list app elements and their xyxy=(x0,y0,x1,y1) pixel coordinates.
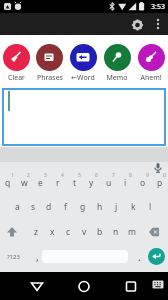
button[interactable]: g xyxy=(74,196,91,218)
staticText: g xyxy=(80,201,86,213)
button[interactable]: m xyxy=(124,221,140,243)
staticText: 1 xyxy=(11,172,14,179)
button[interactable] xyxy=(2,88,166,146)
staticText: d xyxy=(46,201,52,213)
staticText: b xyxy=(97,226,103,238)
staticText: s xyxy=(31,201,36,213)
staticText: o xyxy=(140,177,146,189)
staticText: ←Word xyxy=(71,73,95,83)
button[interactable]: 7 xyxy=(100,172,117,194)
button[interactable] xyxy=(129,16,145,32)
staticText: 0 xyxy=(163,172,166,179)
staticText: y xyxy=(89,177,94,189)
button[interactable]: 2 xyxy=(16,172,32,194)
staticText: q xyxy=(5,177,11,189)
staticText: 3 xyxy=(44,172,47,179)
staticText: i xyxy=(124,177,127,189)
staticText: t xyxy=(73,177,77,189)
staticText: f xyxy=(64,201,67,213)
staticText: 7 xyxy=(112,172,115,179)
button[interactable]: 3 xyxy=(32,172,49,194)
staticText: h xyxy=(97,201,103,213)
staticText: c xyxy=(66,226,71,238)
button[interactable]: d xyxy=(41,196,57,218)
button[interactable] xyxy=(74,276,94,296)
button[interactable]: Phrases xyxy=(33,35,66,83)
button[interactable]: f xyxy=(57,196,74,218)
staticText: a xyxy=(15,201,20,213)
staticText: ?123 xyxy=(7,253,20,261)
button[interactable]: a xyxy=(9,196,25,218)
button[interactable]: ←Word xyxy=(66,35,100,83)
button[interactable]: b xyxy=(92,221,108,243)
staticText: k xyxy=(131,201,136,213)
staticText: 9 xyxy=(146,172,149,179)
staticText: z xyxy=(34,226,38,238)
button[interactable]: 5 xyxy=(66,172,83,194)
button[interactable]: h xyxy=(91,196,108,218)
button[interactable]: x xyxy=(44,221,60,243)
button[interactable]: n xyxy=(108,221,124,243)
staticText: n xyxy=(113,226,119,238)
staticText: Ahem! xyxy=(140,73,162,83)
button[interactable]: ?123 xyxy=(2,246,24,268)
button[interactable]: v xyxy=(76,221,92,243)
button[interactable]: 8 xyxy=(117,172,134,194)
button[interactable]: k xyxy=(125,196,142,218)
staticText: Clear xyxy=(8,73,25,83)
staticText: 3:53 xyxy=(151,2,165,12)
button[interactable] xyxy=(148,248,165,265)
staticText: v xyxy=(82,226,87,238)
staticText: Memo xyxy=(106,73,128,83)
staticText: m xyxy=(128,226,136,238)
button[interactable] xyxy=(151,16,165,32)
button[interactable] xyxy=(151,162,165,174)
staticText: u xyxy=(106,177,112,189)
button[interactable] xyxy=(121,276,141,296)
button[interactable]: s xyxy=(25,196,41,218)
button[interactable]: Ahem! xyxy=(134,35,168,83)
button[interactable]: 4 xyxy=(49,172,66,194)
button[interactable]: , xyxy=(30,246,44,268)
staticText: 2 xyxy=(27,172,30,179)
staticText: , xyxy=(36,250,39,264)
staticText: j xyxy=(115,201,118,213)
button[interactable]: j xyxy=(108,196,125,218)
staticText: Phrases xyxy=(37,73,63,83)
button[interactable]: Memo xyxy=(100,35,134,83)
staticText: 5 xyxy=(78,172,81,179)
button[interactable] xyxy=(27,276,47,296)
staticText: . xyxy=(138,250,141,264)
staticText: 4 xyxy=(61,172,64,179)
button[interactable]: 6 xyxy=(83,172,100,194)
button[interactable]: 9 xyxy=(134,172,151,194)
button[interactable] xyxy=(151,279,165,291)
button[interactable]: Clear xyxy=(0,35,33,83)
button[interactable]: . xyxy=(132,246,146,268)
staticText: 6 xyxy=(95,172,98,179)
button[interactable]: c xyxy=(60,221,76,243)
staticText: w xyxy=(21,177,28,189)
button[interactable] xyxy=(3,221,21,243)
staticText: x xyxy=(50,226,55,238)
button[interactable]: 1 xyxy=(0,172,16,194)
staticText: p xyxy=(157,177,163,189)
button[interactable]: l xyxy=(142,196,159,218)
staticText: r xyxy=(56,177,60,189)
button[interactable] xyxy=(144,221,162,243)
button[interactable]: z xyxy=(28,221,44,243)
button[interactable]: 0 xyxy=(151,172,168,194)
staticText: l xyxy=(149,201,152,213)
staticText: e xyxy=(38,177,43,189)
staticText: 8 xyxy=(129,172,132,179)
